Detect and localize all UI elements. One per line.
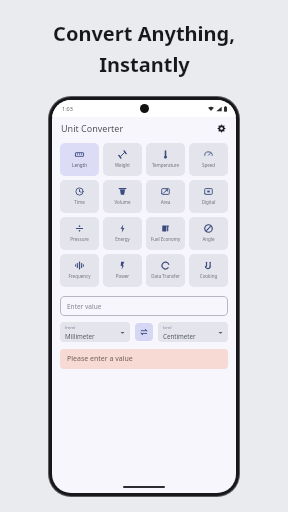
staticText: (mm) bbox=[65, 325, 76, 331]
staticText: Length bbox=[61, 162, 98, 168]
button[interactable]: Angle bbox=[189, 217, 228, 250]
button[interactable]: Temperature bbox=[146, 143, 185, 176]
button[interactable]: Volume bbox=[103, 180, 142, 213]
staticText: Volume bbox=[104, 199, 141, 205]
button[interactable]: Settings bbox=[214, 121, 228, 135]
staticText: Speed bbox=[190, 162, 227, 168]
button[interactable]: Fuel Economy bbox=[146, 217, 185, 250]
button[interactable]: Energy bbox=[103, 217, 142, 250]
staticText: Unit Converter bbox=[61, 122, 124, 134]
button[interactable]: Data Transfer bbox=[146, 254, 185, 287]
button[interactable]: Pressure bbox=[60, 217, 99, 250]
button[interactable]: (mm) bbox=[60, 322, 130, 342]
staticText: Pressure bbox=[61, 236, 98, 242]
staticText: Angle bbox=[190, 236, 227, 242]
staticText: Instantly bbox=[99, 51, 190, 78]
button[interactable]: Time bbox=[60, 180, 99, 213]
staticText: Weight bbox=[104, 162, 141, 168]
staticText: 1:03 bbox=[62, 105, 73, 112]
staticText: Data Transfer bbox=[147, 273, 184, 279]
button[interactable]: Frequency bbox=[60, 254, 99, 287]
staticText: (cm) bbox=[163, 325, 172, 331]
staticText: Enter value bbox=[67, 302, 102, 311]
button[interactable]: Digital bbox=[189, 180, 228, 213]
button[interactable]: Cooking bbox=[189, 254, 228, 287]
staticText: Convert Anything, bbox=[53, 20, 235, 47]
button[interactable]: Speed bbox=[189, 143, 228, 176]
staticText: Centimeter bbox=[163, 332, 196, 340]
staticText: Digital bbox=[190, 199, 227, 205]
staticText: Temperature bbox=[147, 162, 184, 168]
button[interactable]: Weight bbox=[103, 143, 142, 176]
button[interactable]: Area bbox=[146, 180, 185, 213]
button[interactable]: Enter value bbox=[60, 296, 228, 316]
button[interactable]: Power bbox=[103, 254, 142, 287]
staticText: Area bbox=[147, 199, 184, 205]
button[interactable]: (cm) bbox=[158, 322, 228, 342]
staticText: Power bbox=[104, 273, 141, 279]
staticText: Cooking bbox=[190, 273, 227, 279]
staticText: Frequency bbox=[61, 273, 98, 279]
staticText: Fuel Economy bbox=[147, 236, 184, 242]
staticText: Time bbox=[61, 199, 98, 205]
button[interactable]: Swap units bbox=[135, 323, 153, 341]
button[interactable]: Length bbox=[60, 143, 99, 176]
staticText: Millimeter bbox=[65, 332, 95, 340]
staticText: Energy bbox=[104, 236, 141, 242]
staticText: Please enter a value bbox=[67, 354, 133, 364]
